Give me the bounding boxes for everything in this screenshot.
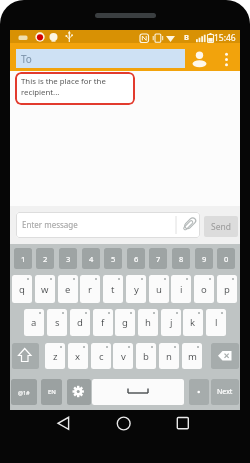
button[interactable]: r <box>80 275 100 303</box>
button[interactable]: b <box>136 343 156 369</box>
button[interactable]: @1# <box>11 379 37 405</box>
button[interactable]: z <box>45 343 65 369</box>
staticText: w <box>41 283 49 296</box>
button[interactable]: c <box>91 343 111 369</box>
staticText: p <box>224 283 230 296</box>
button[interactable]: n <box>159 343 179 369</box>
staticText: o <box>201 283 207 296</box>
staticText: To <box>21 52 32 66</box>
button[interactable]: Next <box>211 379 239 405</box>
button[interactable]: 9 <box>195 248 213 269</box>
button[interactable]: 8 <box>172 248 190 269</box>
staticText: r <box>88 283 92 296</box>
staticText: 3 <box>66 254 71 264</box>
staticText: v <box>121 350 126 363</box>
staticText: g <box>122 316 128 329</box>
button[interactable]: x <box>68 343 88 369</box>
staticText: d <box>77 316 83 329</box>
staticText: 8 <box>179 254 184 264</box>
staticText: a <box>31 316 37 329</box>
staticText: h <box>145 316 151 329</box>
button[interactable]: l <box>206 309 226 336</box>
button[interactable]: e <box>58 275 78 303</box>
button[interactable]: t <box>103 275 123 303</box>
button[interactable]: 2 <box>36 248 54 269</box>
button[interactable]: 1 <box>14 248 32 269</box>
button[interactable]: k <box>183 309 203 336</box>
button[interactable] <box>40 410 85 438</box>
button[interactable]: m <box>182 343 202 369</box>
staticText: @1# <box>18 389 30 396</box>
button[interactable] <box>160 410 205 438</box>
staticText: f <box>101 316 105 329</box>
button[interactable]: 3 <box>59 248 77 269</box>
button[interactable] <box>190 48 210 68</box>
button[interactable]: q <box>12 275 32 303</box>
staticText: t <box>111 283 115 296</box>
staticText: This is the place for the recipient... <box>21 76 106 97</box>
button[interactable]: d <box>70 309 90 336</box>
staticText: n <box>166 350 172 363</box>
staticText: 6 <box>134 254 139 264</box>
staticText: 7 <box>156 254 161 264</box>
staticText: i <box>180 283 183 296</box>
button[interactable]: u <box>149 275 169 303</box>
staticText: 2 <box>43 254 48 264</box>
staticText: 9 <box>202 254 207 264</box>
button[interactable]: EN <box>41 379 62 405</box>
button[interactable]: 0 <box>217 248 235 269</box>
button[interactable] <box>12 343 39 369</box>
staticText: x <box>75 350 81 363</box>
staticText: 15:46 <box>214 32 236 43</box>
button[interactable] <box>211 343 239 369</box>
staticText: k <box>190 316 196 329</box>
staticText: s <box>55 316 60 329</box>
staticText: EN <box>48 388 56 396</box>
button[interactable]: p <box>217 275 237 303</box>
staticText: 1 <box>21 254 26 264</box>
staticText: m <box>188 350 197 363</box>
button[interactable]: s <box>47 309 67 336</box>
staticText: z <box>53 350 58 363</box>
button[interactable]: Enter message <box>16 212 200 238</box>
button[interactable]: w <box>35 275 55 303</box>
button[interactable]: o <box>194 275 214 303</box>
button[interactable]: 7 <box>149 248 167 269</box>
staticText: 4 <box>89 254 94 264</box>
button[interactable] <box>166 208 200 238</box>
staticText: e <box>65 283 71 296</box>
staticText: 0 <box>224 254 229 264</box>
staticText: Enter message <box>22 219 78 230</box>
staticText: j <box>170 316 173 329</box>
staticText: q <box>19 283 25 296</box>
button[interactable]: Send <box>204 216 238 237</box>
staticText: B <box>184 32 189 42</box>
button[interactable]: f <box>93 309 113 336</box>
button[interactable]: a <box>24 309 44 336</box>
staticText: l <box>215 316 218 329</box>
staticText: 5 <box>111 254 116 264</box>
button[interactable]: 6 <box>127 248 145 269</box>
staticText: Next <box>217 387 233 397</box>
button[interactable]: y <box>126 275 146 303</box>
button[interactable]: v <box>113 343 133 369</box>
button[interactable] <box>189 379 209 405</box>
button[interactable]: To <box>16 49 185 68</box>
button[interactable] <box>92 379 184 405</box>
button[interactable] <box>100 410 145 438</box>
staticText: b <box>143 350 149 363</box>
button[interactable] <box>220 48 234 70</box>
button[interactable]: j <box>161 309 181 336</box>
button[interactable]: g <box>115 309 135 336</box>
staticText: Send <box>211 221 231 233</box>
staticText: c <box>99 350 104 363</box>
button[interactable]: 4 <box>82 248 100 269</box>
button[interactable]: h <box>138 309 158 336</box>
staticText: u <box>156 283 162 296</box>
button[interactable]: 5 <box>104 248 122 269</box>
button[interactable]: i <box>171 275 191 303</box>
button[interactable] <box>67 379 91 405</box>
staticText: y <box>134 283 139 296</box>
